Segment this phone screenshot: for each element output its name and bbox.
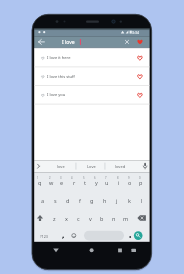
staticText: 3:34 <box>132 30 140 35</box>
button[interactable] <box>105 160 133 172</box>
button[interactable] <box>113 246 125 255</box>
staticText: I love it here <box>47 55 71 61</box>
staticText: 8 <box>117 176 119 180</box>
button[interactable] <box>34 48 149 67</box>
button[interactable] <box>46 160 75 172</box>
staticText: r <box>73 179 76 186</box>
button[interactable] <box>84 231 124 241</box>
button[interactable] <box>86 246 98 255</box>
staticText: f <box>79 197 81 204</box>
button[interactable] <box>76 160 104 172</box>
staticText: e <box>60 179 64 186</box>
staticText: y <box>95 179 98 186</box>
button[interactable] <box>34 85 149 104</box>
staticText: g <box>90 197 94 204</box>
staticText: k <box>128 197 131 204</box>
staticText: v <box>89 215 92 222</box>
staticText: 2 <box>49 176 51 180</box>
staticText: b <box>100 215 104 222</box>
staticText: d <box>66 197 70 204</box>
staticText: z <box>53 215 56 222</box>
staticText: w <box>49 179 54 186</box>
staticText: loved <box>115 164 126 169</box>
button[interactable] <box>135 37 146 47</box>
staticText: t <box>84 179 86 186</box>
staticText: I love you <box>47 92 66 98</box>
button[interactable] <box>134 231 143 240</box>
staticText: q <box>38 179 42 186</box>
staticText: 9 <box>128 176 130 180</box>
staticText: s <box>54 197 57 204</box>
staticText: 3 <box>60 176 62 180</box>
button[interactable] <box>34 67 149 86</box>
staticText: 0 <box>139 176 141 180</box>
staticText: j <box>116 197 118 204</box>
staticText: I love <box>62 39 75 46</box>
button[interactable] <box>122 37 132 47</box>
staticText: x <box>65 215 68 222</box>
staticText: p <box>139 179 143 186</box>
button[interactable] <box>36 37 46 47</box>
staticText: u <box>105 179 109 186</box>
staticText: 7 <box>105 176 107 180</box>
staticText: o <box>128 179 132 186</box>
staticText: c <box>77 215 80 222</box>
button[interactable] <box>50 246 62 255</box>
staticText: l <box>141 197 143 204</box>
staticText: a <box>41 197 45 204</box>
staticText: Love <box>87 164 96 169</box>
staticText: h <box>103 197 107 204</box>
staticText: I love this stuff <box>47 74 75 80</box>
staticText: ?123 <box>40 234 48 239</box>
staticText: n <box>112 215 116 222</box>
staticText: 6 <box>94 176 96 180</box>
staticText: 1 <box>37 176 39 180</box>
button[interactable] <box>140 160 150 172</box>
staticText: 4 <box>71 176 73 180</box>
staticText: 5 <box>83 176 85 180</box>
staticText: love <box>57 164 65 169</box>
staticText: m <box>123 215 129 222</box>
staticText: i <box>118 179 120 186</box>
